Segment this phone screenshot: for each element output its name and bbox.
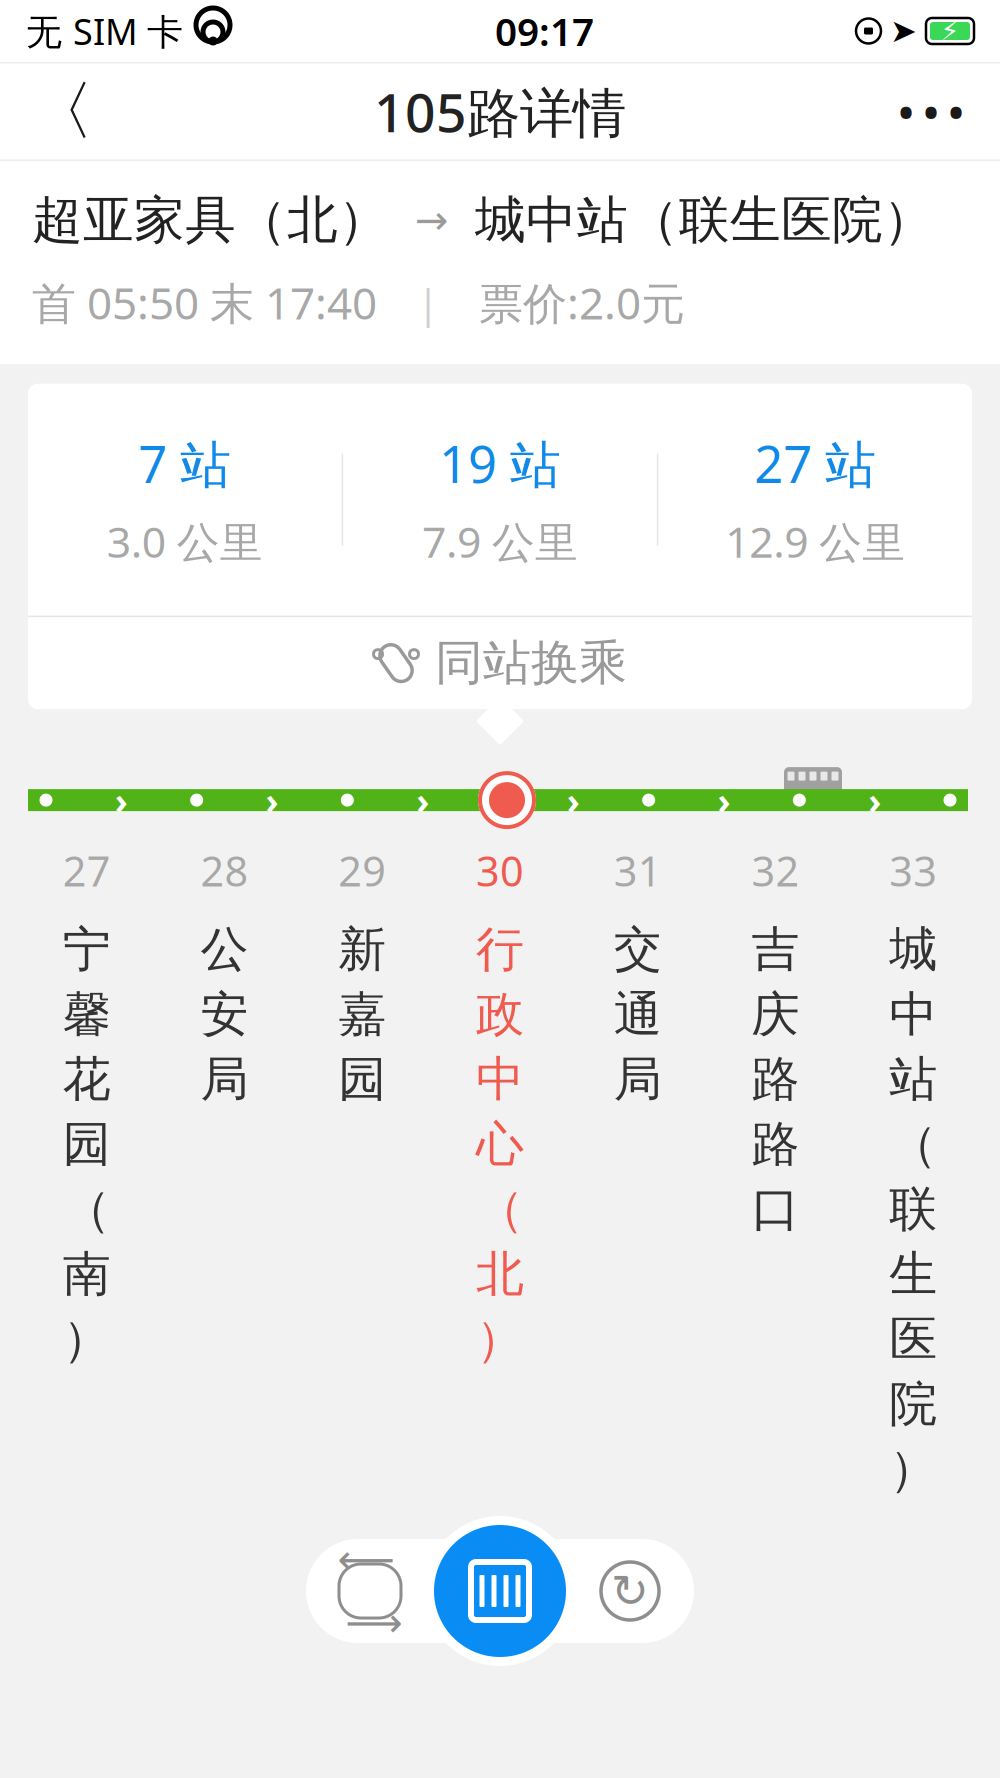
staticText: 7 站 [138,430,231,497]
staticText: 政 [476,985,524,1044]
staticText: 同站换乘 [435,634,627,693]
staticText: ） [476,1310,524,1369]
staticText: 局 [614,1050,662,1109]
staticText: 中 [476,1050,524,1109]
staticText: › [717,776,730,824]
button[interactable]: 换向 [305,1539,435,1643]
staticText: 19 站 [439,430,561,497]
staticText: 超亚家具（北） [32,189,389,251]
staticText: 通 [614,985,662,1044]
staticText: 院 [889,1375,937,1434]
staticText: 南 [63,1245,111,1304]
staticText: ↻ [611,1565,649,1617]
staticText: 心 [476,1115,524,1174]
staticText: › [868,776,881,824]
button[interactable]: 29 [293,843,431,1499]
button[interactable]: 32 [707,843,844,1499]
staticText: 宁 [63,920,111,979]
staticText: 105路详情 [374,76,626,147]
button[interactable]: 同站换乘 [28,617,972,709]
staticText: ⚡︎ [940,16,959,46]
button[interactable]: 31 [569,843,707,1499]
staticText: 联 [889,1180,937,1239]
staticText: 吉 [751,920,799,979]
staticText: 路 [751,1115,799,1174]
button[interactable]: 更多 [876,63,986,159]
staticText: 交 [614,920,662,979]
button[interactable]: 28 [156,843,293,1499]
staticText: › [265,776,278,824]
staticText: 28 [201,843,249,898]
staticText: 12.9 公里 [725,513,905,570]
staticText: （ [63,1180,111,1239]
staticText: 医 [889,1310,937,1369]
staticText: 中 [889,985,937,1044]
staticText: ⟶ [345,1600,402,1645]
staticText: › [416,776,429,824]
staticText: 30 [476,843,524,898]
staticText: 31 [614,843,662,898]
staticText: 口 [751,1180,799,1239]
staticText: 首 05:50 末 17:40 [32,273,377,332]
staticText: 27 [63,843,111,898]
staticText: 花 [63,1050,111,1109]
staticText: | [377,276,479,329]
button[interactable]: 扫码乘车 [425,1516,575,1666]
staticText: • • • [898,85,963,138]
staticText: 局 [201,1050,249,1109]
button[interactable]: 33 [844,843,982,1499]
staticText: ） [63,1310,111,1369]
staticText: 庆 [751,985,799,1044]
staticText: 32 [751,843,799,898]
staticText: 园 [63,1115,111,1174]
staticText: › [115,776,128,824]
staticText: 生 [889,1245,937,1304]
staticText: 无 SIM 卡 [26,7,183,55]
button[interactable]: 返回 [14,63,110,159]
staticText: ➤ [890,13,917,49]
staticText: 城 [889,920,937,979]
button[interactable]: 30 [431,843,569,1499]
staticText: 行 [476,920,524,979]
staticText: 新 [338,920,386,979]
staticText: 园 [338,1050,386,1109]
staticText: 嘉 [338,985,386,1044]
staticText: 票价:2.0元 [479,273,685,332]
staticText: ） [889,1440,937,1499]
staticText: 馨 [63,985,111,1044]
button[interactable]: 刷新 [565,1539,695,1643]
staticText: 公 [201,920,249,979]
staticText: 33 [889,843,937,898]
staticText: 城中站（联生医院） [475,189,934,251]
staticText: （ [889,1115,937,1174]
staticText: 27 站 [754,430,876,497]
staticText: 站 [889,1050,937,1109]
staticText: › [567,776,580,824]
staticText: 7.9 公里 [422,513,578,570]
staticText: 〈 [30,72,94,151]
staticText: ⟵ [337,1537,394,1582]
button[interactable]: 27 [18,843,156,1499]
staticText: 安 [201,985,249,1044]
staticText: 北 [476,1245,524,1304]
staticText: 29 [338,843,386,898]
staticText: 3.0 公里 [107,513,263,570]
staticText: 路 [751,1050,799,1109]
staticText: 09:17 [495,5,594,57]
staticText: （ [476,1180,524,1239]
staticText: → [389,197,475,243]
